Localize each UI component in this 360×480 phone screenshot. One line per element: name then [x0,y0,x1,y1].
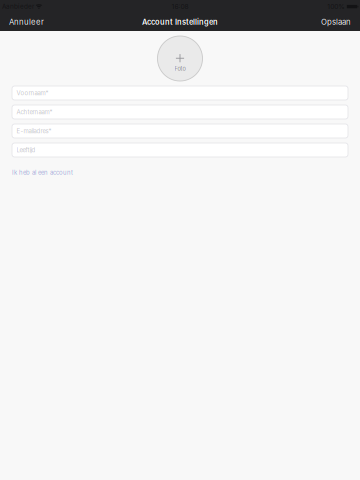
button[interactable]: Achternaam* [12,105,348,119]
staticText: Achternaam* [17,108,53,116]
button[interactable]: Voornaam* [12,86,348,100]
staticText: Foto [174,65,185,72]
button[interactable]: Ik heb al een account [12,167,73,178]
staticText: 100% [327,2,345,11]
button[interactable]: Foto toevoegen [157,36,202,81]
staticText: Account Instellingen [142,17,218,26]
staticText: E-mailadres* [17,127,52,135]
staticText: Opslaan [321,17,351,27]
staticText: Leeftijd [17,146,36,154]
staticText: Annuleer [9,17,44,27]
staticText: Ik heb al een account [12,169,73,176]
button[interactable]: Opslaan [312,13,360,31]
staticText: Aanbieder [2,3,34,10]
button[interactable]: Annuleer [0,13,53,31]
staticText: 16:08 [171,2,188,11]
button[interactable]: Leeftijd [12,143,348,157]
staticText: Voornaam* [17,89,49,97]
button[interactable]: E-mailadres* [12,124,348,138]
